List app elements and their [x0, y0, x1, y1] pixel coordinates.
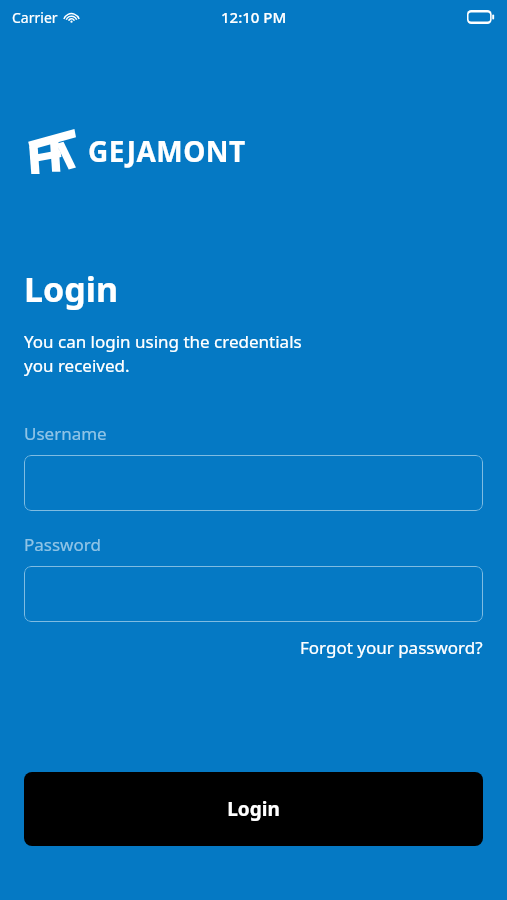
staticText: Username — [24, 422, 107, 445]
staticText: Carrier — [12, 8, 58, 27]
staticText: GEJAMONT — [88, 132, 246, 170]
button[interactable] — [24, 455, 483, 511]
button[interactable]: Forgot your password? — [300, 636, 483, 659]
staticText: Password — [24, 533, 101, 556]
staticText: 12:10 PM — [221, 7, 287, 27]
staticText: Forgot your password? — [300, 636, 483, 659]
staticText: Login — [24, 266, 119, 312]
staticText: You can login using the credentials you … — [24, 330, 302, 377]
button[interactable]: Login — [24, 772, 483, 846]
staticText: Login — [227, 796, 280, 822]
button[interactable] — [24, 566, 483, 622]
